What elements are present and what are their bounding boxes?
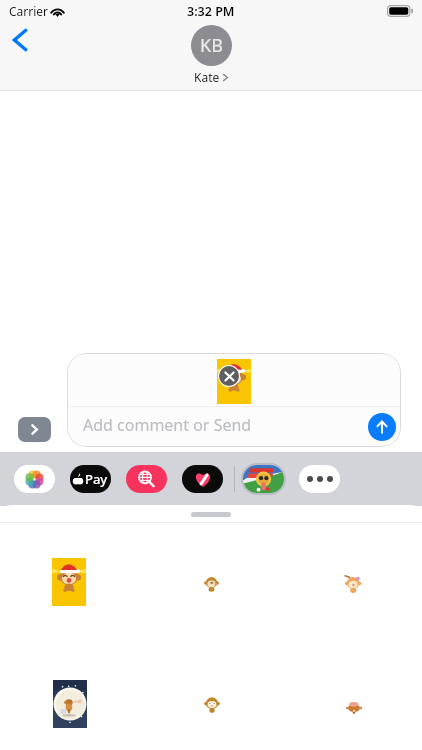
button[interactable]: Send [368,413,396,441]
button[interactable]: Sticker [344,700,364,714]
button[interactable]: Remove attachment [218,365,240,387]
button[interactable]: Attached sticker [217,359,251,404]
staticText: Pay [85,470,108,488]
button[interactable]: Sticker [53,680,87,728]
button[interactable]: Sticker [344,574,363,593]
staticText: KB [200,33,223,58]
button[interactable]: Apple Pay [70,465,111,493]
button[interactable]: Sticker [203,575,220,592]
button[interactable]: Kate contact details [191,25,232,85]
button[interactable]: Sticker [203,695,221,713]
button[interactable]: Search [126,465,167,493]
staticText: Add comment or Send [83,414,252,436]
button[interactable]: More apps [18,417,51,442]
button[interactable]: Christmas stickers [241,463,286,495]
button[interactable]: Digital Touch [182,465,223,493]
button[interactable]: Back [3,21,41,59]
staticText: Carrier [9,3,49,19]
staticText: 3:32 PM [187,3,235,20]
button[interactable]: More [299,465,340,493]
button[interactable]: Sticker [52,558,86,606]
button[interactable]: Photos [14,465,55,493]
staticText: Kate [194,69,220,85]
